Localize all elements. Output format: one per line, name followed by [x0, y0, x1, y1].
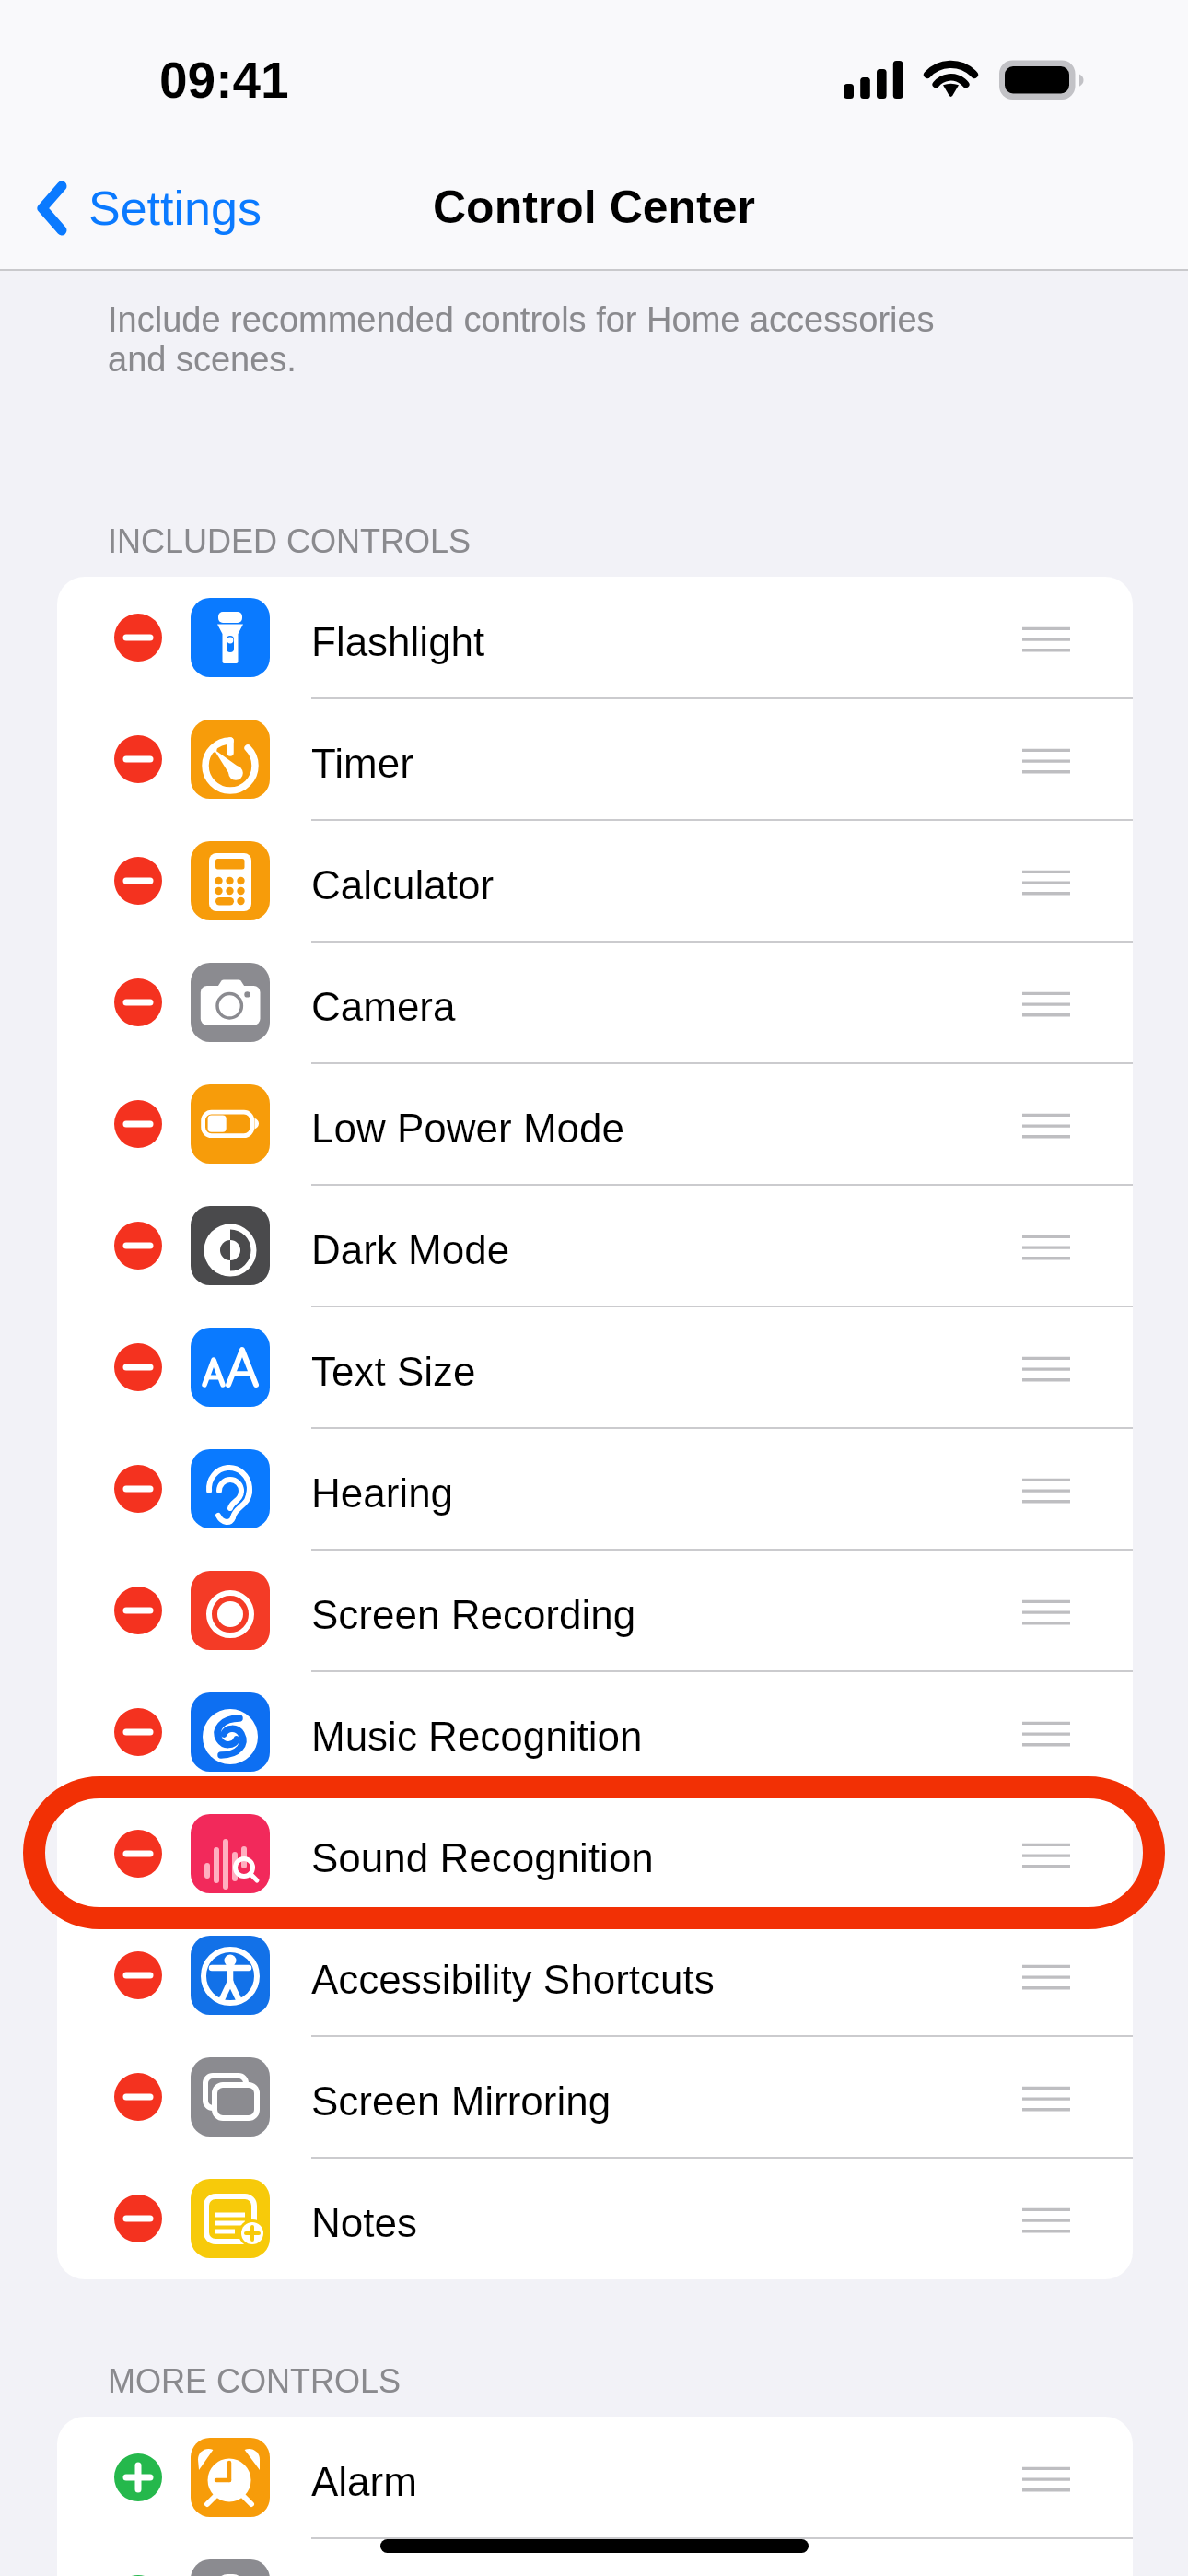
staticText: Calculator [311, 862, 495, 907]
button[interactable]: Remove [57, 698, 1133, 820]
staticText: Sound Recognition [311, 1835, 654, 1880]
other: Remove [114, 614, 162, 662]
button[interactable]: Remove [57, 1671, 1133, 1793]
other: Remove [114, 978, 162, 1026]
staticText: Screen Recording [311, 1592, 636, 1637]
button[interactable]: Remove [57, 577, 1133, 698]
other: Remove [114, 1951, 162, 1999]
other: Add [114, 2575, 162, 2576]
other: Remove [114, 735, 162, 783]
button[interactable]: Remove [57, 1185, 1133, 1306]
other: Remove [114, 1343, 162, 1391]
other: Add [114, 2453, 162, 2501]
button[interactable]: Settings [0, 153, 282, 263]
other: Remove [114, 1100, 162, 1148]
staticText: Timer [311, 741, 413, 786]
staticText: Alarm [311, 2459, 417, 2504]
button[interactable]: Remove [57, 2158, 1133, 2279]
staticText: Accessibility Shortcuts [311, 1957, 715, 2002]
button[interactable]: Remove [57, 2036, 1133, 2158]
button[interactable]: Remove [57, 1063, 1133, 1185]
staticText: Camera [311, 984, 456, 1029]
button[interactable]: Remove [57, 942, 1133, 1063]
staticText: Low Power Mode [311, 1106, 624, 1151]
staticText: Music Recognition [311, 1714, 643, 1759]
other: Remove [114, 1465, 162, 1513]
staticText: Screen Mirroring [311, 2078, 611, 2124]
other: Remove [114, 857, 162, 905]
staticText: Control Center [0, 181, 1188, 233]
other: Remove [114, 2073, 162, 2121]
button[interactable]: Remove [57, 1428, 1133, 1550]
other: Remove [114, 1830, 162, 1878]
staticText: Settings [88, 181, 262, 235]
button[interactable]: Remove [57, 1306, 1133, 1428]
other: Remove [114, 2195, 162, 2242]
button[interactable]: Remove [57, 1793, 1133, 1914]
staticText: Flashlight [311, 619, 485, 664]
button[interactable]: Remove [57, 820, 1133, 942]
staticText: 09:41 [159, 52, 289, 108]
staticText: Text Size [311, 1349, 476, 1394]
button[interactable]: Add [57, 2417, 1133, 2538]
staticText: Notes [311, 2200, 417, 2245]
staticText: Include recommended controls for Home ac… [108, 300, 983, 379]
staticText: Hearing [311, 1470, 454, 1516]
other: Remove [114, 1587, 162, 1634]
other: Remove [114, 1708, 162, 1756]
button[interactable]: Remove [57, 1914, 1133, 2036]
staticText: Dark Mode [311, 1227, 510, 1272]
button[interactable]: Add [57, 2538, 1133, 2576]
other: Remove [114, 1222, 162, 1270]
staticText: MORE CONTROLS [108, 2362, 402, 2399]
button[interactable]: Remove [57, 1550, 1133, 1671]
staticText: INCLUDED CONTROLS [108, 522, 472, 559]
